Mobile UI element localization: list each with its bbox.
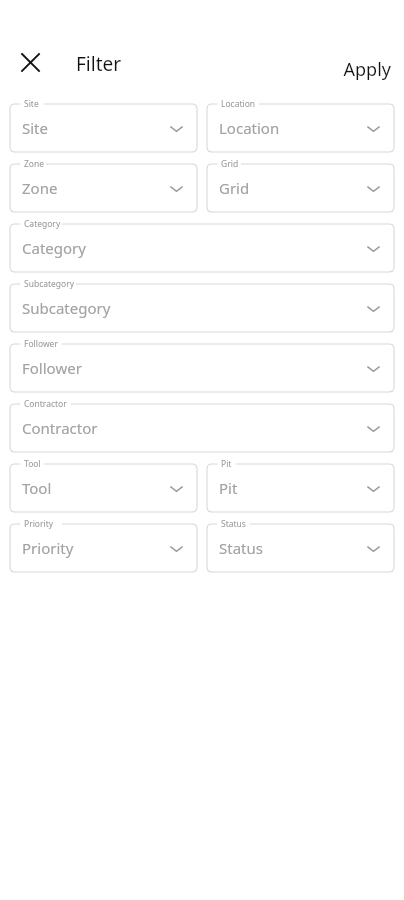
button[interactable]: Site xyxy=(10,98,197,152)
staticText: Grid xyxy=(221,158,239,170)
staticText: Zone xyxy=(22,178,58,198)
button[interactable]: Status xyxy=(207,518,394,572)
staticText: Subcategory xyxy=(24,278,75,290)
button[interactable]: Apply xyxy=(336,51,398,88)
staticText: Tool xyxy=(22,478,52,498)
button[interactable]: Zone xyxy=(10,158,197,212)
staticText: Category xyxy=(24,218,61,230)
staticText: Priority xyxy=(24,518,54,530)
staticText: Contractor xyxy=(22,418,98,438)
staticText: Contractor xyxy=(24,398,67,410)
staticText: Site xyxy=(24,98,39,110)
button[interactable]: Location xyxy=(207,98,394,152)
staticText: Follower xyxy=(24,338,58,350)
staticText: Zone xyxy=(24,158,45,170)
button[interactable]: Close xyxy=(8,40,52,84)
staticText: Category xyxy=(22,238,86,258)
staticText: Apply xyxy=(343,57,391,82)
staticText: Site xyxy=(22,118,48,138)
button[interactable]: Subcategory xyxy=(10,278,394,332)
staticText: Grid xyxy=(219,178,250,198)
button[interactable]: Category xyxy=(10,218,394,272)
staticText: Tool xyxy=(24,458,41,470)
staticText: Filter xyxy=(76,51,122,77)
button[interactable]: Priority xyxy=(10,518,197,572)
button[interactable]: Grid xyxy=(207,158,394,212)
staticText: Subcategory xyxy=(22,298,111,318)
staticText: Status xyxy=(221,518,246,530)
staticText: Priority xyxy=(22,538,74,558)
staticText: Status xyxy=(219,538,263,558)
staticText: Location xyxy=(219,118,280,138)
staticText: Pit xyxy=(219,478,238,498)
button[interactable]: Contractor xyxy=(10,398,394,452)
staticText: Pit xyxy=(221,458,232,470)
staticText: Location xyxy=(221,98,256,110)
staticText: Follower xyxy=(22,358,82,378)
button[interactable]: Pit xyxy=(207,458,394,512)
button[interactable]: Tool xyxy=(10,458,197,512)
button[interactable]: Follower xyxy=(10,338,394,392)
